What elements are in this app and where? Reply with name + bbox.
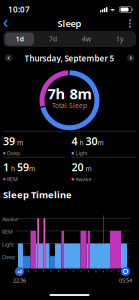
staticText: Total Sleep [52,101,87,110]
staticText: 39 [3,134,15,148]
staticText: Deep [7,150,20,157]
staticText: 1d [16,35,24,43]
staticText: 20 [71,160,83,174]
staticText: 10:07 [8,4,30,15]
staticText: Sleep [57,17,81,29]
staticText: m [97,138,103,147]
button[interactable] [127,54,135,62]
staticText: Sleep Timeline [3,188,72,201]
staticText: 7h 8m [47,84,91,103]
staticText: REM [2,228,13,235]
staticText: Light [76,150,88,157]
staticText: 30 [85,134,97,148]
staticText: REM [7,176,18,183]
staticText: 1 [3,160,9,174]
staticText: Deep [2,253,15,260]
staticText: h [77,138,85,147]
staticText: Thursday, September 5 [24,53,114,64]
staticText: Awake [76,176,92,183]
button[interactable]: 7d [36,31,69,47]
staticText: m [15,138,23,147]
button[interactable]: 4w [70,31,103,47]
staticText: Awake [2,216,18,223]
staticText: 59 [17,160,29,174]
staticText: 4 [71,134,77,148]
button[interactable] [5,54,12,62]
staticText: 4w [82,35,91,43]
button[interactable]: 1y [103,31,136,47]
button[interactable]: 1d [3,31,36,47]
staticText: m [83,164,91,173]
staticText: h [9,164,17,173]
button[interactable] [0,0,139,300]
staticText: 05:54 [119,277,132,284]
staticText: 1y [116,35,123,43]
staticText: 22:36 [13,277,26,284]
staticText: m [29,164,35,173]
staticText: 7d [49,35,57,43]
staticText: Light [2,241,14,248]
button[interactable] [0,0,139,300]
staticText: zZ [17,269,21,274]
